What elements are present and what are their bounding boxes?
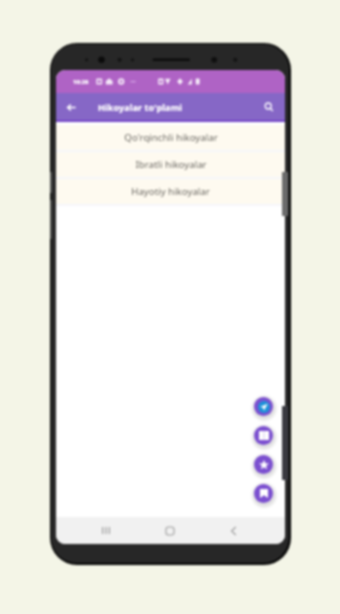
staticText: Hayotiy hikoyalar <box>131 185 210 198</box>
button[interactable]: Hayotiy hikoyalar <box>56 179 285 204</box>
staticText: Ibratli hikoyalar <box>135 158 207 171</box>
button[interactable]: Telegram channel <box>254 397 273 416</box>
staticText: Hikoyalar to'plami <box>98 101 183 113</box>
button[interactable]: Ibratli hikoyalar <box>56 152 285 177</box>
button[interactable]: Qo'rqinchli hikoyalar <box>56 125 285 150</box>
button[interactable]: Back <box>219 517 247 544</box>
staticText: Qo'rqinchli hikoyalar <box>124 131 218 144</box>
button[interactable]: Bookmarks <box>254 484 273 503</box>
button[interactable]: Back <box>60 96 82 118</box>
staticText: 10:28 <box>73 78 89 86</box>
button[interactable]: Rate app <box>254 455 273 474</box>
button[interactable]: My books <box>254 426 273 445</box>
button[interactable]: Search <box>258 96 280 118</box>
button[interactable]: Home <box>156 517 184 544</box>
button[interactable]: Recent apps <box>92 517 120 544</box>
